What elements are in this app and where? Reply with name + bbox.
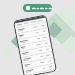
button[interactable] (22, 58, 55, 70)
button[interactable] (21, 52, 54, 64)
button[interactable]: App badge icon (23, 4, 52, 12)
button[interactable]: Tab 1 (14, 15, 56, 75)
button[interactable]: Tab 2 (23, 21, 31, 25)
other: App badge icon (26, 6, 30, 10)
button[interactable]: Tab 3 (30, 20, 37, 23)
button[interactable]: Tab 4 (37, 19, 44, 22)
button[interactable] (24, 69, 56, 75)
button[interactable] (18, 34, 50, 46)
button[interactable] (23, 64, 56, 75)
button[interactable] (15, 22, 48, 34)
button[interactable] (16, 28, 49, 40)
button[interactable] (20, 46, 52, 58)
button[interactable]: Tab 1 (16, 23, 24, 26)
button[interactable] (19, 40, 51, 52)
